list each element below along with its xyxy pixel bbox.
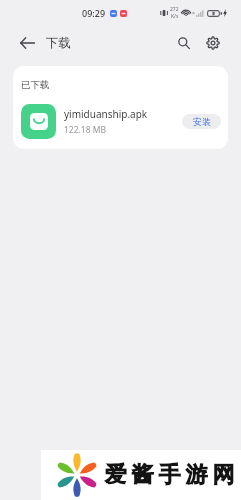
staticText: 已下载 <box>21 79 50 91</box>
button[interactable]: Settings <box>201 31 225 55</box>
staticText: K/s <box>171 13 179 20</box>
staticText: 爱酱手游网 <box>102 461 237 489</box>
staticText: 272 <box>170 6 179 13</box>
staticText: 122.18 MB <box>64 124 107 136</box>
staticText: × <box>192 10 195 17</box>
staticText: yimiduanship.apk <box>64 107 148 121</box>
button[interactable]: 安装 <box>182 114 221 129</box>
staticText: 安装 <box>193 116 211 127</box>
staticText: 09:29 <box>82 7 106 19</box>
button[interactable]: Search <box>172 31 196 55</box>
button[interactable]: Back <box>14 30 40 56</box>
staticText: 下载 <box>46 35 71 51</box>
button[interactable]: yimiduanship.apk <box>13 91 228 149</box>
